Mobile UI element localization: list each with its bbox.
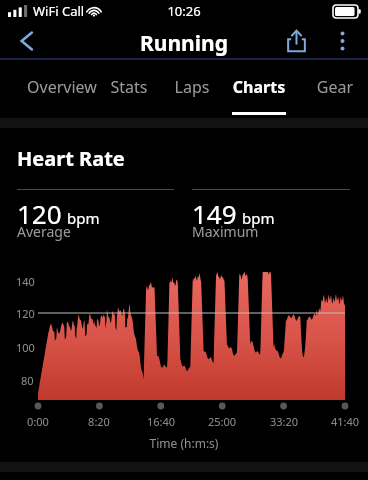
- staticText: Stats: [93, 76, 165, 98]
- button[interactable]: Back: [6, 22, 48, 60]
- button[interactable]: Charts: [222, 61, 296, 118]
- staticText: 25:00: [198, 414, 246, 429]
- button[interactable]: Stats: [93, 61, 165, 118]
- staticText: Maximum: [192, 222, 259, 241]
- staticText: 100: [16, 340, 35, 355]
- staticText: Laps: [159, 76, 225, 98]
- staticText: bpm: [67, 208, 100, 228]
- staticText: Gear: [301, 76, 368, 98]
- staticText: 8:20: [75, 414, 123, 429]
- staticText: WiFi Call: [33, 2, 85, 20]
- staticText: 120: [17, 196, 62, 231]
- button[interactable]: Overview: [11, 61, 113, 118]
- button[interactable]: Share: [277, 22, 315, 60]
- staticText: 80: [21, 373, 34, 388]
- staticText: 0:00: [14, 414, 62, 429]
- button[interactable]: Laps: [159, 61, 225, 118]
- staticText: Time (h:m:s): [0, 435, 368, 451]
- staticText: Average: [17, 222, 71, 241]
- staticText: 140: [16, 274, 35, 289]
- staticText: Running: [0, 29, 368, 58]
- staticText: 16:40: [137, 414, 185, 429]
- staticText: 33:20: [260, 414, 308, 429]
- staticText: Charts: [222, 76, 296, 98]
- button[interactable]: Gear: [301, 61, 368, 118]
- staticText: 120: [16, 306, 35, 321]
- staticText: Heart Rate: [17, 145, 125, 172]
- staticText: 41:40: [321, 414, 368, 429]
- staticText: Overview: [11, 76, 113, 98]
- staticText: bpm: [242, 208, 275, 228]
- button[interactable]: More options: [325, 22, 359, 60]
- staticText: 149: [192, 196, 237, 231]
- staticText: 10:26: [0, 2, 368, 20]
